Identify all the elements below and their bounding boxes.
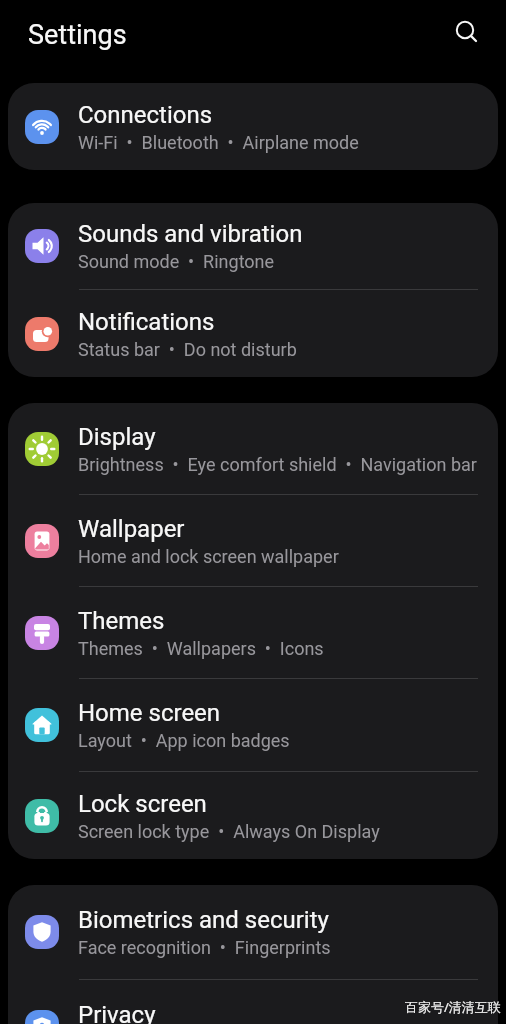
staticText: Brightness • Eye comfort shield • Naviga… bbox=[78, 454, 477, 475]
button[interactable]: Home screen bbox=[8, 679, 498, 771]
button[interactable]: Wallpaper bbox=[8, 495, 498, 586]
staticText: Display bbox=[78, 423, 156, 451]
staticText: Themes • Wallpapers • Icons bbox=[78, 638, 324, 659]
staticText: Home screen bbox=[78, 699, 221, 727]
staticText: Sounds and vibration bbox=[78, 220, 303, 248]
button[interactable]: Privacy bbox=[8, 980, 498, 1024]
button[interactable]: Sounds and vibration bbox=[8, 203, 498, 289]
staticText: Privacy bbox=[78, 1001, 156, 1024]
button[interactable]: Display bbox=[8, 403, 498, 494]
button[interactable]: Biometrics and security bbox=[8, 885, 498, 979]
staticText: Sound mode • Ringtone bbox=[78, 251, 275, 272]
staticText: Wallpaper bbox=[78, 515, 185, 543]
staticText: Biometrics and security bbox=[78, 906, 329, 934]
staticText: Home and lock screen wallpaper bbox=[78, 546, 339, 567]
staticText: Lock screen bbox=[78, 790, 207, 818]
button[interactable]: Themes bbox=[8, 587, 498, 678]
button[interactable]: Notifications bbox=[8, 290, 498, 377]
staticText: Settings bbox=[28, 19, 127, 51]
staticText: Wi-Fi • Bluetooth • Airplane mode bbox=[78, 132, 359, 153]
staticText: Status bar • Do not disturb bbox=[78, 339, 297, 360]
button[interactable]: Connections bbox=[8, 83, 498, 170]
staticText: Notifications bbox=[78, 308, 215, 336]
staticText: Layout • App icon badges bbox=[78, 730, 290, 751]
staticText: 百家号/清清互联 bbox=[405, 998, 501, 1016]
staticText: Connections bbox=[78, 101, 213, 129]
button[interactable] bbox=[452, 18, 482, 48]
staticText: Screen lock type • Always On Display bbox=[78, 821, 380, 842]
staticText: Themes bbox=[78, 607, 165, 635]
button[interactable]: Lock screen bbox=[8, 772, 498, 859]
staticText: Face recognition • Fingerprints bbox=[78, 937, 331, 958]
